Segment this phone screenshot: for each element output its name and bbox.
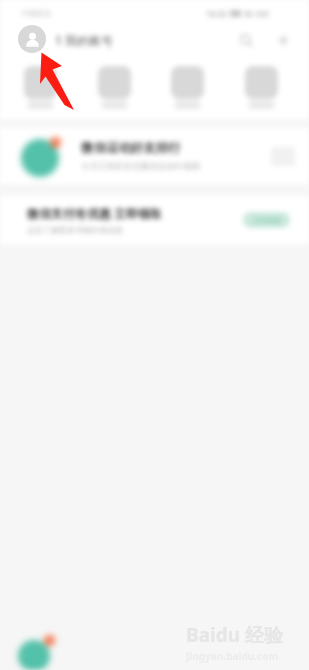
button[interactable]: Quick action 0 [20, 66, 60, 109]
button[interactable]: 微信运动好友排行 [0, 128, 309, 184]
staticText: 1 我的账号 [55, 32, 113, 48]
staticText: 微信支付有优惠 立即领取 [27, 205, 163, 221]
button[interactable]: 微信支付有优惠 立即领取 [0, 196, 309, 244]
staticText: 立即查看 [253, 216, 281, 225]
button[interactable]: Profile avatar [18, 25, 46, 53]
button[interactable]: Quick action 2 [167, 66, 207, 109]
staticText: Baidu 经验 [186, 622, 283, 648]
button[interactable]: Quick action 3 [241, 66, 281, 109]
staticText: Jingyan.baidu.com [186, 649, 279, 663]
staticText: 中国移动 [21, 9, 51, 18]
button[interactable]: Quick action 1 [94, 66, 134, 109]
staticText: 15:22 [206, 8, 227, 19]
button[interactable]: 立即查看 [243, 212, 290, 228]
button[interactable]: More options [271, 28, 295, 52]
staticText: 点击了解更多详细内容信息 [27, 225, 123, 235]
staticText: 今天已有好友在微信运动中领跑 [81, 161, 200, 172]
staticText: 微信运动好友排行 [81, 140, 181, 156]
button[interactable]: Search [234, 28, 258, 52]
